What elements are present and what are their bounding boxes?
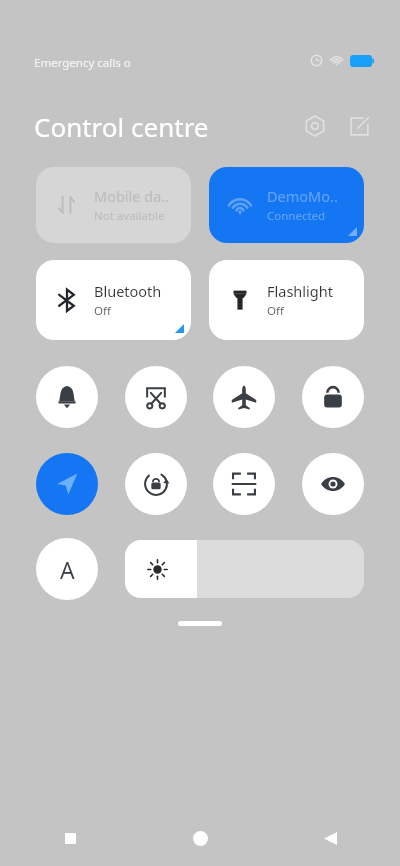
button[interactable]: Font size <box>36 538 98 600</box>
button[interactable]: Brightness <box>125 540 364 598</box>
staticText: Mobile da.. <box>94 186 170 206</box>
button[interactable]: Settings <box>300 111 330 141</box>
staticText: DemoMo.. <box>267 186 338 206</box>
staticText: Emergency calls o <box>34 55 131 71</box>
button[interactable]: Home <box>134 810 267 866</box>
staticText: Bluetooth <box>94 281 162 301</box>
staticText: Connected <box>267 208 326 224</box>
button[interactable]: Bluetooth <box>36 260 191 340</box>
button[interactable]: Recents <box>0 810 134 866</box>
staticText: A <box>60 554 75 585</box>
button[interactable]: Notifications <box>36 366 98 428</box>
button[interactable]: Eye comfort <box>302 453 364 515</box>
staticText: Off <box>94 303 111 319</box>
button[interactable]: Aeroplane mode <box>213 366 275 428</box>
button[interactable]: Flashlight <box>209 260 364 340</box>
staticText: Off <box>267 303 284 319</box>
button[interactable]: Location <box>36 453 98 515</box>
button[interactable]: DemoMo.. <box>209 167 364 243</box>
button[interactable]: Screenshot <box>125 366 187 428</box>
button[interactable]: Rotation lock <box>125 453 187 515</box>
button[interactable]: Back <box>267 810 400 866</box>
button[interactable]: Scan <box>213 453 275 515</box>
button[interactable]: Lock <box>302 366 364 428</box>
staticText: Not available <box>94 208 165 224</box>
staticText: Flashlight <box>267 281 333 301</box>
staticText: Control centre <box>34 109 209 144</box>
button[interactable]: Mobile da.. <box>36 167 191 243</box>
button[interactable]: Edit <box>344 111 374 141</box>
